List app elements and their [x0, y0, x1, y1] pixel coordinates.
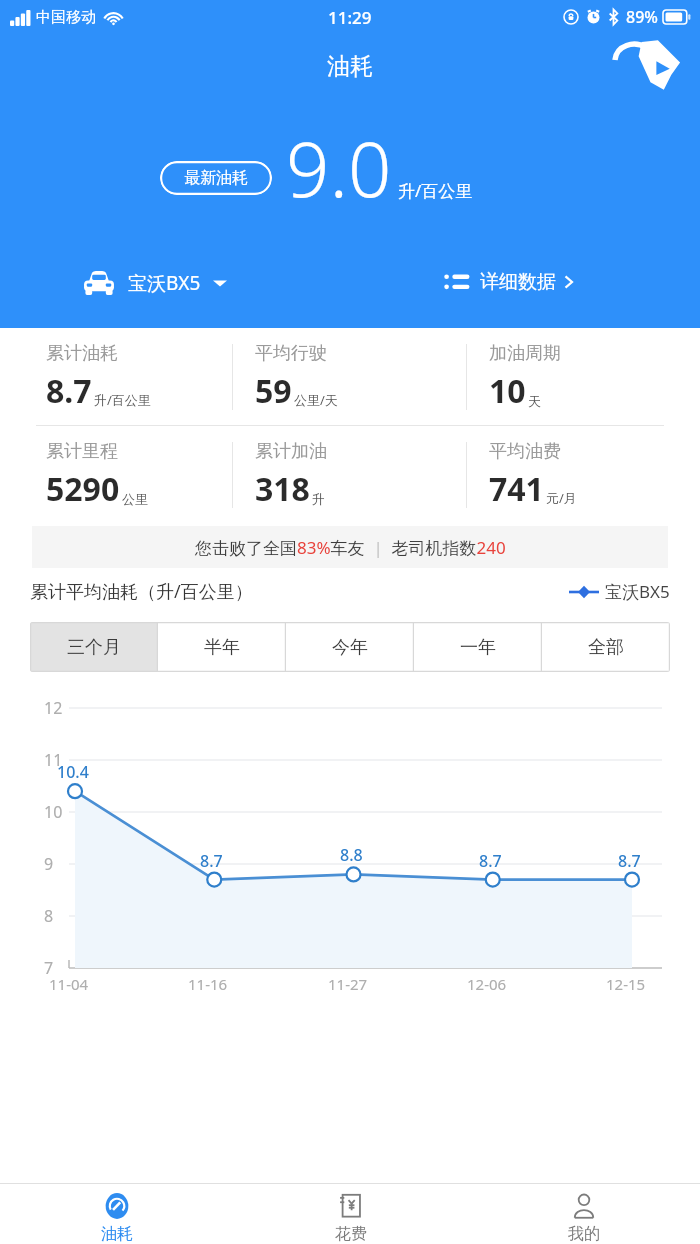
button[interactable]: 累计里程	[0, 426, 232, 511]
button[interactable]: 累计油耗	[0, 328, 232, 413]
staticText: 318	[255, 467, 310, 511]
staticText: 三个月	[67, 636, 121, 659]
staticText: 公里/天	[294, 391, 338, 409]
staticText: 累计里程	[46, 440, 118, 463]
staticText: 10	[489, 369, 526, 413]
staticText: 您击败了全国83%车友 | 老司机指数240	[195, 536, 506, 559]
staticText: 12-15	[606, 974, 646, 994]
staticText: 累计油耗	[46, 342, 118, 365]
staticText: 11:29	[328, 6, 372, 29]
staticText: 平均油费	[489, 440, 561, 463]
staticText: 升/百公里	[94, 391, 151, 409]
staticText: 8.7	[46, 369, 92, 413]
button[interactable]: 累计加油	[233, 426, 466, 511]
button[interactable]: 详细数据	[440, 266, 578, 298]
button[interactable]: 今年	[286, 622, 414, 672]
staticText: 详细数据	[480, 270, 556, 294]
button[interactable]: 一年	[414, 622, 542, 672]
staticText: 元/月	[546, 489, 577, 507]
staticText: 59	[255, 369, 292, 413]
staticText: 741	[489, 467, 544, 511]
staticText: 11-27	[328, 974, 368, 994]
staticText: 公里	[122, 491, 148, 507]
staticText: 8.7	[479, 850, 502, 872]
staticText: 中国移动	[36, 8, 96, 27]
staticText: 8	[44, 905, 54, 927]
staticText: 12-06	[467, 974, 507, 994]
staticText: 累计平均油耗（升/百公里）	[30, 579, 253, 604]
button[interactable]: 花费	[234, 1184, 467, 1244]
staticText: 平均行驶	[255, 342, 327, 365]
staticText: 累计加油	[255, 440, 327, 463]
staticText: 10	[44, 801, 63, 823]
staticText: 12	[44, 697, 63, 719]
staticText: 宝沃BX5	[128, 270, 201, 296]
button[interactable]: 加油	[612, 34, 686, 96]
staticText: 7	[44, 957, 54, 979]
button[interactable]: 半年	[158, 622, 286, 672]
staticText: 升	[312, 491, 325, 507]
staticText: 油耗	[101, 1224, 133, 1244]
button[interactable]: 宝沃BX5	[78, 266, 231, 300]
staticText: 89%	[626, 6, 658, 28]
staticText: 天	[528, 393, 541, 409]
staticText: 半年	[204, 636, 240, 659]
staticText: 花费	[335, 1224, 367, 1244]
staticText: 全部	[588, 636, 624, 659]
button[interactable]: 我的	[467, 1184, 700, 1244]
button[interactable]: 平均油费	[467, 426, 700, 511]
staticText: 5290	[46, 467, 120, 511]
button[interactable]: 您击败了全国83%车友 | 老司机指数240	[32, 526, 668, 568]
staticText: 我的	[568, 1224, 600, 1244]
button[interactable]: 三个月	[30, 622, 158, 672]
staticText: 升/百公里	[398, 179, 473, 202]
staticText: 最新油耗	[184, 168, 248, 188]
button[interactable]: 加油周期	[467, 328, 700, 413]
staticText: 8.8	[340, 844, 363, 866]
staticText: 今年	[332, 636, 368, 659]
staticText: 11-16	[188, 974, 228, 994]
staticText: 9	[44, 853, 54, 875]
button[interactable]: 平均行驶	[233, 328, 466, 413]
staticText: 加油周期	[489, 342, 561, 365]
staticText: 8.7	[618, 850, 641, 872]
staticText: 一年	[460, 636, 496, 659]
staticText: 油耗	[327, 52, 373, 81]
staticText: 8.7	[200, 850, 223, 872]
button[interactable]: 油耗	[0, 1184, 234, 1244]
staticText: 宝沃BX5	[605, 580, 670, 603]
button[interactable]: 全部	[542, 622, 670, 672]
staticText: 11	[44, 749, 63, 771]
staticText: 9.0	[286, 116, 392, 220]
staticText: 10.4	[57, 761, 89, 783]
staticText: 11-04	[49, 974, 89, 994]
